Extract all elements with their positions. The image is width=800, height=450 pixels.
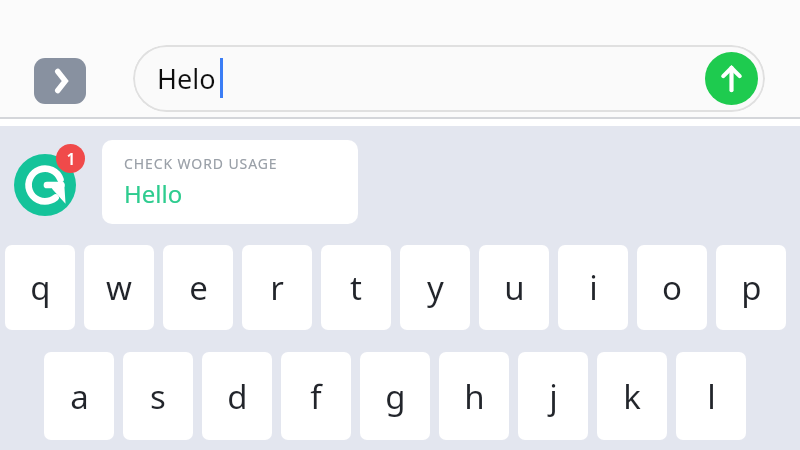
button[interactable]: l — [676, 352, 746, 440]
button[interactable]: i — [558, 245, 628, 330]
staticText: e — [189, 265, 208, 310]
staticText: y — [427, 265, 444, 310]
staticText: u — [504, 265, 525, 310]
staticText: 1 — [66, 148, 76, 170]
button[interactable]: r — [242, 245, 312, 330]
button[interactable]: t — [321, 245, 391, 330]
button[interactable]: Expand — [34, 58, 86, 104]
button[interactable]: p — [716, 245, 786, 330]
button[interactable]: f — [281, 352, 351, 440]
button[interactable]: h — [439, 352, 509, 440]
button[interactable]: g — [360, 352, 430, 440]
button[interactable]: q — [5, 245, 75, 330]
staticText: p — [741, 265, 762, 310]
staticText: w — [106, 265, 132, 310]
staticText: r — [270, 265, 284, 310]
staticText: d — [227, 374, 248, 419]
staticText: Hello — [124, 177, 183, 210]
staticText: q — [30, 265, 51, 310]
button[interactable]: e — [163, 245, 233, 330]
staticText: t — [350, 265, 362, 310]
staticText: k — [623, 374, 641, 419]
staticText: CHECK WORD USAGE — [124, 154, 278, 173]
button[interactable]: o — [637, 245, 707, 330]
staticText: a — [70, 374, 89, 419]
button[interactable]: Send — [705, 52, 758, 105]
staticText: o — [662, 265, 682, 310]
button[interactable]: Grammarly — [14, 154, 76, 216]
button[interactable]: CHECK WORD USAGE — [102, 140, 358, 224]
button[interactable]: y — [400, 245, 470, 330]
staticText: j — [549, 374, 558, 419]
button[interactable]: k — [597, 352, 667, 440]
staticText: h — [464, 374, 485, 419]
staticText: g — [385, 374, 406, 419]
button[interactable]: a — [44, 352, 114, 440]
staticText: l — [707, 374, 716, 419]
button[interactable]: w — [84, 245, 154, 330]
button[interactable]: j — [518, 352, 588, 440]
button[interactable]: s — [123, 352, 193, 440]
staticText: f — [310, 374, 322, 419]
button[interactable]: u — [479, 245, 549, 330]
staticText: Helo — [157, 60, 216, 97]
button[interactable]: d — [202, 352, 272, 440]
staticText: i — [589, 265, 598, 310]
staticText: s — [150, 374, 166, 419]
button[interactable]: Helo — [133, 45, 765, 112]
